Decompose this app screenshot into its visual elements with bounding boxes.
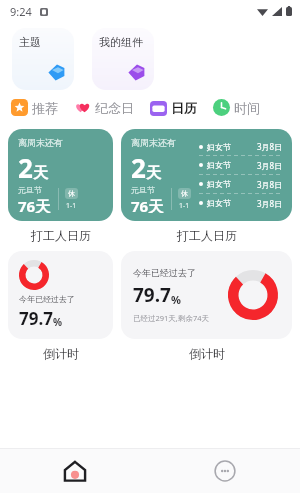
staticText: 3月8日 [257,160,283,171]
staticText: 3月8日 [257,198,283,209]
staticText: 76天 [18,196,51,213]
staticText: 妇女节 [207,179,231,189]
staticText: 打工人日历 [31,228,91,243]
button[interactable]: 离周末还有 [121,129,292,221]
staticText: 3月8日 [257,141,283,152]
staticText: 79.7 [19,307,53,330]
staticText: 元旦节 [18,185,42,195]
button[interactable]: 时间 [212,96,261,119]
staticText: 主题 [19,35,41,49]
staticText: 打工人日历 [177,228,237,243]
staticText: 妇女节 [207,142,231,152]
button[interactable]: 离周末还有 [8,129,113,221]
staticText: 天 [33,164,48,183]
staticText: % [171,292,181,307]
button[interactable]: 我的组件 [92,28,154,90]
staticText: 2 [18,150,33,185]
staticText: 已经过291天,剩余74天 [133,313,209,323]
staticText: 9:24 [10,4,32,19]
button[interactable]: 纪念日 [73,96,135,119]
staticText: 时间 [234,100,260,116]
button[interactable]: 今年已经过去了 [8,251,113,339]
staticText: 离周末还有 [18,137,63,148]
staticText: 离周末还有 [131,137,176,148]
staticText: 1-1 [179,201,190,211]
staticText: 日历 [171,100,197,116]
staticText: 天 [146,164,161,183]
staticText: 今年已经过去了 [19,294,75,304]
button[interactable]: 推荐 [10,96,59,119]
staticText: 79.7 [133,282,171,308]
staticText: 3月8日 [257,179,283,190]
staticText: 倒计时 [189,346,225,361]
staticText: 推荐 [32,100,58,116]
staticText: 我的组件 [99,35,143,49]
staticText: 妇女节 [207,198,231,208]
button[interactable]: 主题 [12,28,74,90]
staticText: 妇女节 [207,160,231,170]
staticText: 元旦节 [131,185,155,195]
staticText: 今年已经过去了 [133,267,196,278]
staticText: % [53,315,63,329]
staticText: 1-1 [66,201,77,211]
button[interactable]: 我的 [150,449,300,493]
button[interactable]: 日历 [149,96,198,119]
staticText: 76天 [131,196,164,213]
staticText: 倒计时 [43,346,79,361]
button[interactable]: 首页 [0,449,150,493]
staticText: 2 [131,150,146,185]
staticText: 休 [181,189,188,198]
staticText: 纪念日 [95,100,134,116]
staticText: 休 [68,189,75,198]
button[interactable]: 今年已经过去了 [121,251,292,339]
